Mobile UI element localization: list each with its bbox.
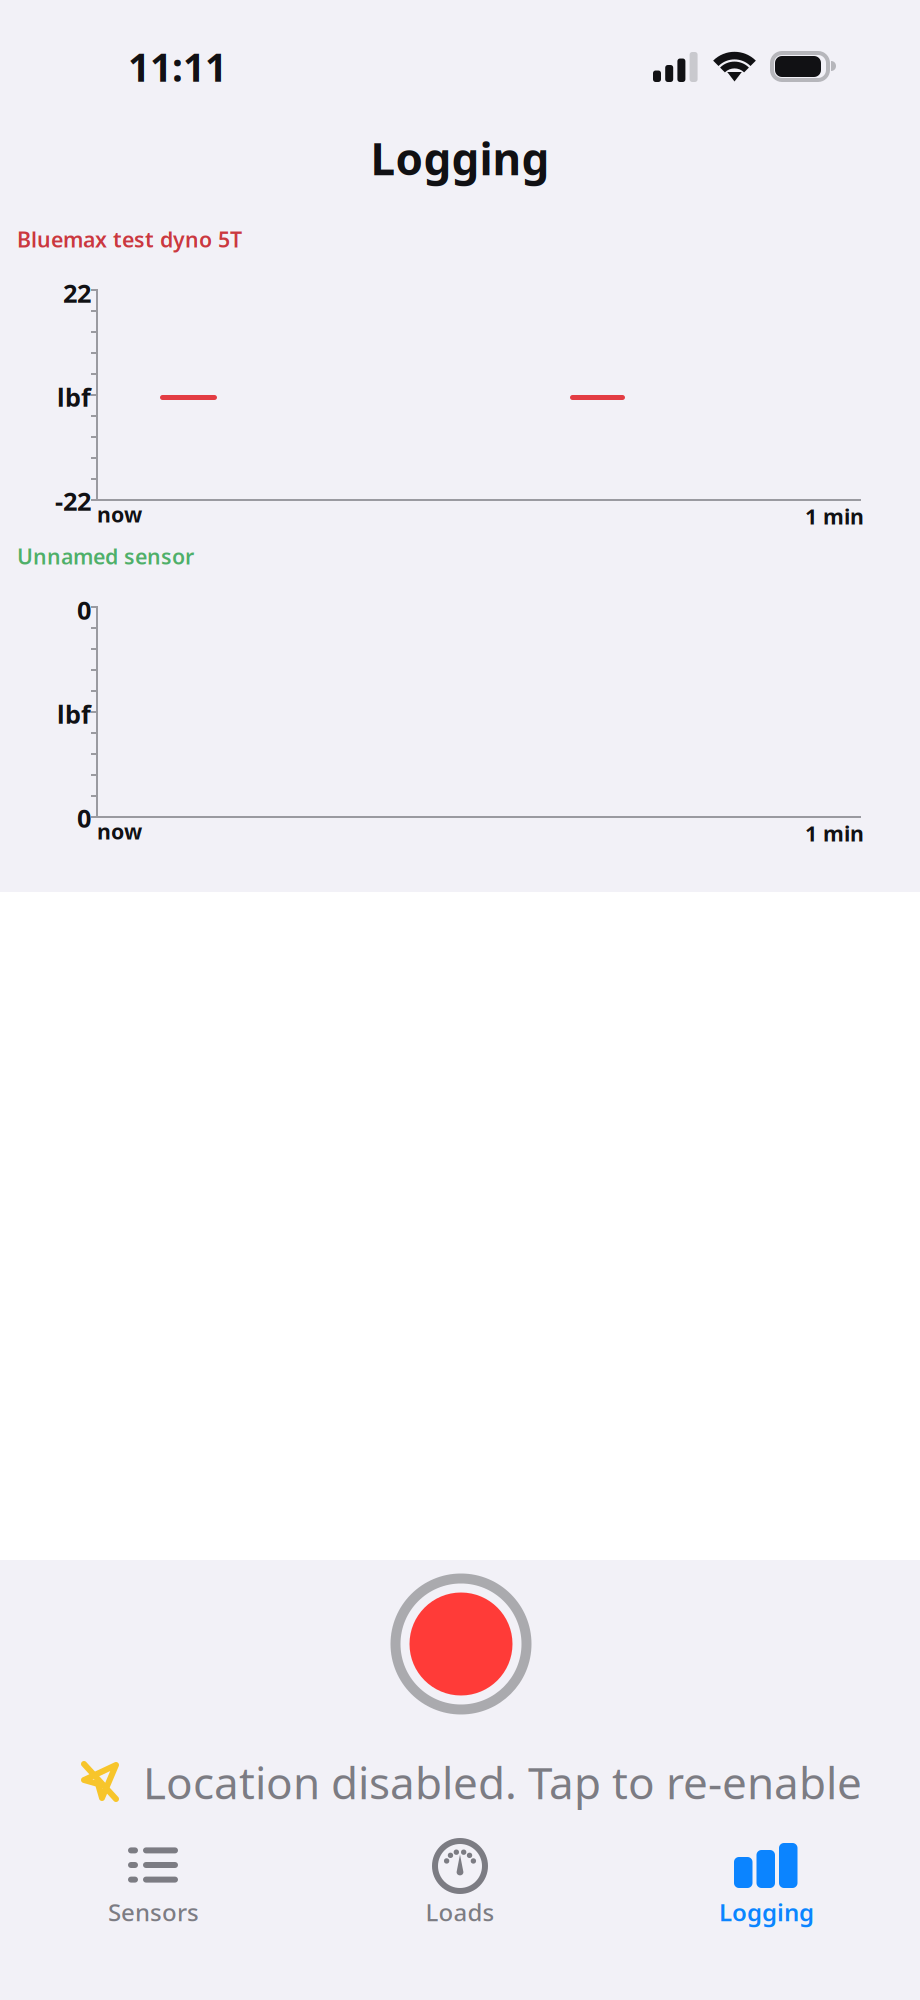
staticText: Unnamed sensor [17, 542, 194, 570]
staticText: 1 min [805, 819, 864, 847]
staticText: lbf [57, 380, 91, 414]
staticText: 0 [77, 801, 91, 835]
staticText: Loads [425, 1896, 494, 1928]
staticText: 0 [77, 593, 91, 627]
staticText: 11:11 [128, 41, 227, 92]
staticText: -22 [55, 484, 91, 518]
button[interactable]: Start recording [386, 1569, 536, 1719]
button[interactable]: Location disabled. Tap to re-enable [0, 1560, 920, 2000]
staticText: Bluemax test dyno 5T [17, 225, 242, 253]
staticText: lbf [57, 697, 91, 731]
staticText: 22 [63, 276, 91, 310]
button[interactable]: Logging [613, 1882, 920, 1942]
button[interactable]: Sensors [0, 1882, 307, 1942]
staticText: 1 min [805, 502, 864, 530]
staticText: now [97, 500, 142, 528]
staticText: Location disabled. Tap to re-enable [143, 1753, 862, 1811]
staticText: now [97, 817, 142, 845]
staticText: Sensors [108, 1896, 199, 1928]
staticText: Logging [719, 1896, 814, 1928]
button[interactable]: Loads [307, 1882, 613, 1942]
staticText: Logging [370, 129, 549, 187]
